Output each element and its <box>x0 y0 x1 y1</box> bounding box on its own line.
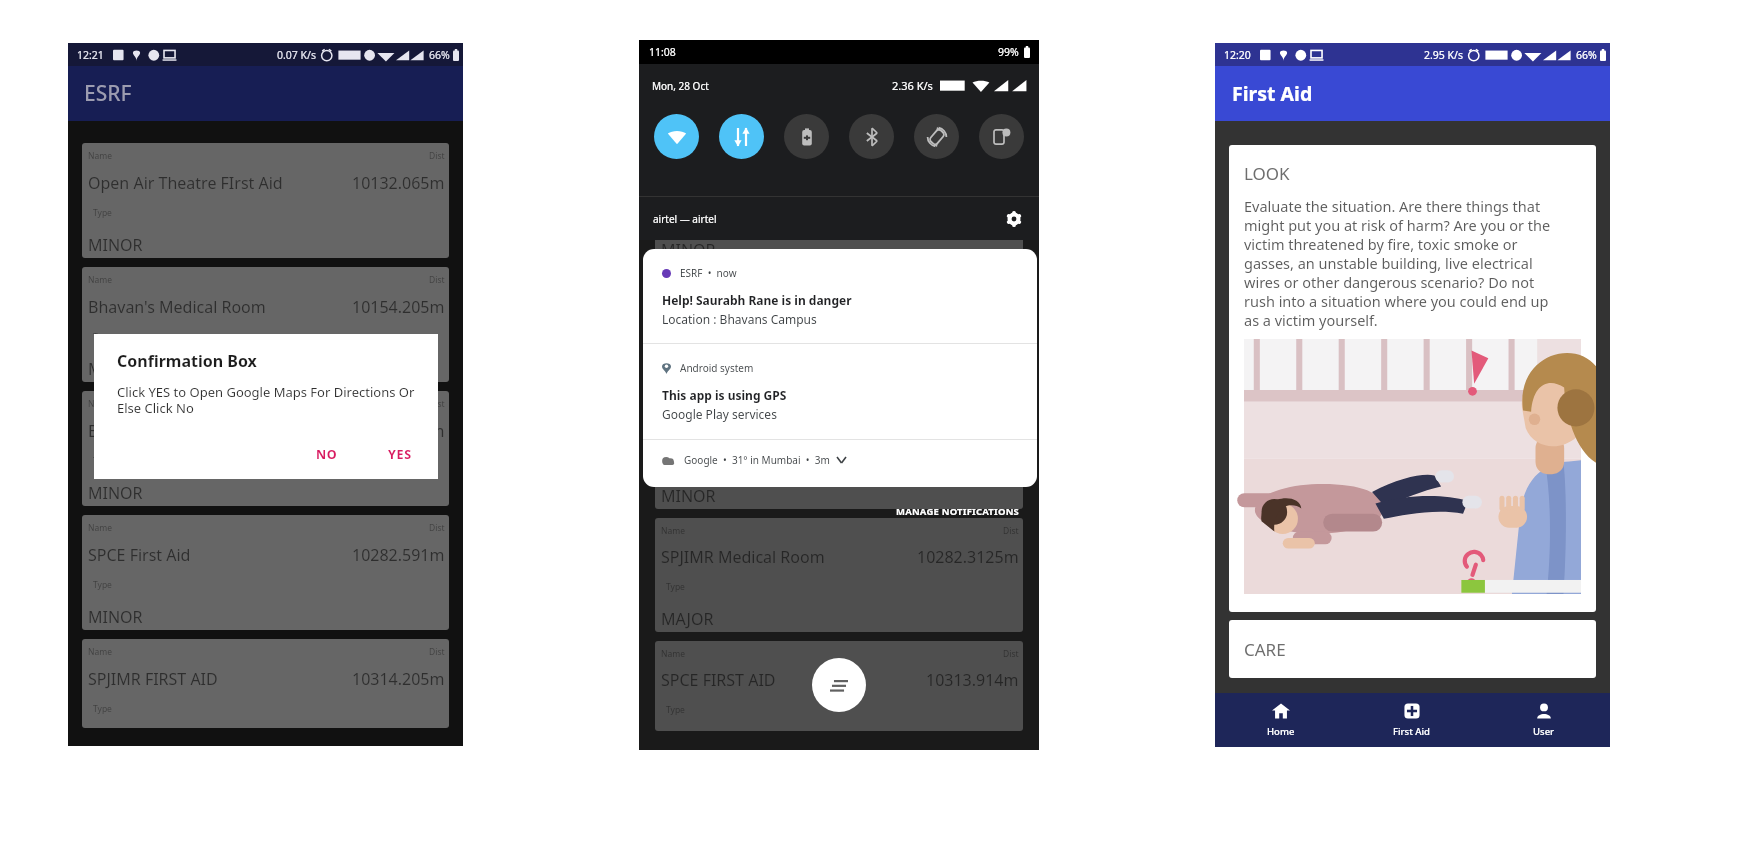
staticText: 10132.065m <box>926 177 1019 199</box>
button[interactable]: Cast <box>979 114 1024 159</box>
button[interactable]: Name <box>82 267 449 382</box>
staticText: 66% <box>1576 48 1597 62</box>
staticText: SPJIMR FIRST AID <box>88 668 218 690</box>
staticText: Type <box>93 331 112 343</box>
staticText: Name <box>661 525 685 537</box>
staticText: MINOR <box>88 234 143 256</box>
staticText: NO <box>316 446 338 463</box>
staticText: Android system <box>680 361 754 375</box>
staticText: 10154.205m <box>352 296 445 318</box>
staticText: ESRF • now <box>680 266 737 280</box>
staticText: Click YES to Open Google Maps For Direct… <box>117 383 415 417</box>
staticText: MINOR <box>661 485 716 507</box>
staticText: Open Air Theatre <box>661 177 790 199</box>
staticText: 10282.591m <box>352 544 445 566</box>
staticText: SPCE FIRST AID <box>661 669 776 691</box>
staticText: 10314.205m <box>352 668 445 690</box>
button[interactable]: User <box>1478 693 1610 747</box>
staticText: Name <box>88 398 112 410</box>
button[interactable]: Name <box>82 391 449 506</box>
staticText: First Aid <box>1232 80 1313 107</box>
button[interactable]: YES <box>380 441 420 468</box>
staticText: Name <box>661 402 685 414</box>
button[interactable]: Name <box>655 149 1023 263</box>
staticText: CARE <box>1244 638 1286 661</box>
button[interactable]: Bluetooth <box>849 114 894 159</box>
button[interactable]: Wi-Fi <box>654 114 699 159</box>
staticText: Name <box>88 646 112 658</box>
staticText: Dist <box>429 398 445 410</box>
staticText: 10282.3125m <box>917 546 1019 568</box>
staticText: This app is using GPS <box>662 387 787 403</box>
staticText: Location : Bhavans Campus <box>662 311 817 327</box>
staticText: Help! Saurabh Rane is in danger <box>662 292 852 308</box>
staticText: Open Air Theatre <box>661 300 790 322</box>
staticText: 10154.205m <box>352 420 445 442</box>
button[interactable]: CARE <box>1229 620 1596 678</box>
staticText: First Aid <box>1393 725 1431 738</box>
staticText: Mon, 28 Oct <box>652 79 709 93</box>
button[interactable]: Android system <box>643 344 1037 439</box>
staticText: Type <box>666 212 685 224</box>
staticText: Confirmation Box <box>117 350 257 372</box>
staticText: airtel — airtel <box>653 212 717 226</box>
staticText: 0.07 K/s <box>277 48 316 62</box>
staticText: YES <box>388 446 412 463</box>
staticText: Type <box>666 704 685 716</box>
button[interactable]: First Aid <box>1215 66 1610 121</box>
button[interactable]: Name <box>655 395 1023 509</box>
staticText: Dist <box>1003 525 1019 537</box>
staticText: Open Air Theatre <box>661 423 790 445</box>
button[interactable]: Name <box>655 272 1023 386</box>
staticText: 99% <box>998 45 1019 59</box>
button[interactable]: First Aid <box>1346 693 1478 747</box>
staticText: MANAGE NOTIFICATIONS <box>896 505 1020 518</box>
button[interactable]: Name <box>82 143 449 258</box>
staticText: 10313.914m <box>926 669 1019 691</box>
staticText: 12:20 <box>1224 48 1251 62</box>
staticText: Dist <box>429 274 445 286</box>
staticText: Dist <box>429 522 445 534</box>
button[interactable]: NO <box>308 441 346 468</box>
button[interactable]: Name <box>655 641 1023 731</box>
button[interactable]: Battery saver <box>784 114 829 159</box>
button[interactable]: Auto rotate <box>914 114 959 159</box>
button[interactable]: ESRF <box>68 66 463 121</box>
staticText: ESRF <box>84 79 132 108</box>
staticText: Dist <box>429 646 445 658</box>
button[interactable]: Home <box>1215 693 1346 747</box>
staticText: Name <box>661 156 685 168</box>
staticText: 12:21 <box>77 48 104 62</box>
button[interactable]: Mobile data <box>719 114 764 159</box>
staticText: Type <box>666 335 685 347</box>
staticText: SPJIMR Medical Room <box>661 546 825 568</box>
staticText: SPCE First Aid <box>88 544 191 566</box>
staticText: Name <box>88 150 112 162</box>
staticText: MINOR <box>88 482 143 504</box>
staticText: Home <box>1267 725 1295 738</box>
button[interactable]: Settings <box>1005 210 1023 228</box>
button[interactable]: LOOK <box>1229 145 1596 612</box>
button[interactable]: MANAGE NOTIFICATIONS <box>639 505 1020 518</box>
button[interactable]: Name <box>82 639 449 728</box>
staticText: Google • 31° in Mumbai • 3m <box>684 453 830 467</box>
button[interactable]: ESRF • now <box>643 249 1037 343</box>
button[interactable]: Name <box>655 518 1023 632</box>
staticText: Type <box>666 581 685 593</box>
button[interactable]: Name <box>82 515 449 630</box>
staticText: MINOR <box>88 358 143 380</box>
button[interactable]: Sort list <box>812 658 866 712</box>
staticText: Type <box>666 458 685 470</box>
staticText: MINOR <box>661 239 716 261</box>
staticText: Name <box>88 522 112 534</box>
staticText: 66% <box>429 48 450 62</box>
staticText: Google Play services <box>662 406 777 422</box>
staticText: Dist <box>1003 156 1019 168</box>
staticText: MINOR <box>661 362 716 384</box>
button[interactable]: Google • 31° in Mumbai • 3m <box>643 440 1037 487</box>
staticText: Bhavan's Medical Room <box>88 420 266 442</box>
staticText: Type <box>93 579 112 591</box>
staticText: Bhavan's Medical Room <box>88 296 266 318</box>
